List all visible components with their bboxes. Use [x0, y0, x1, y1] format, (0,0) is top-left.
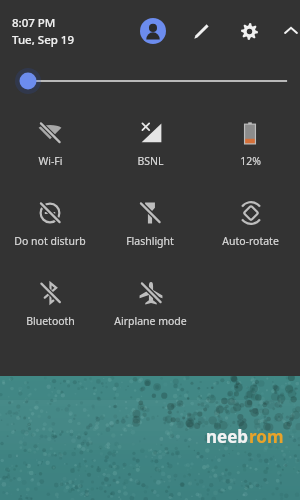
- staticText: Tue, Sep 19: [12, 32, 75, 48]
- staticText: 12%: [240, 154, 261, 168]
- button[interactable]: Auto-rotate: [218, 198, 283, 250]
- button[interactable]: Brightness: [0, 62, 300, 100]
- staticText: Wi-Fi: [38, 154, 63, 168]
- staticText: Flashlight: [126, 234, 174, 248]
- staticText: Auto-rotate: [222, 234, 279, 248]
- staticText: Bluetooth: [26, 314, 75, 328]
- button[interactable]: Do not disturb: [10, 198, 90, 250]
- button[interactable]: Settings: [234, 16, 264, 46]
- button[interactable]: Bluetooth: [22, 278, 79, 330]
- button[interactable]: Wi-Fi: [33, 118, 67, 170]
- button[interactable]: BSNL: [133, 118, 168, 170]
- staticText: neeb: [206, 425, 249, 448]
- button[interactable]: Flashlight: [122, 198, 178, 250]
- button[interactable]: Airplane mode: [110, 278, 191, 330]
- staticText: rom: [249, 425, 284, 448]
- staticText: BSNL: [137, 154, 164, 168]
- button[interactable]: 12%: [233, 118, 267, 170]
- button[interactable]: User account: [138, 16, 168, 46]
- staticText: 8:07 PM: [12, 15, 56, 31]
- button[interactable]: Edit tiles: [186, 16, 216, 46]
- staticText: Airplane mode: [114, 314, 187, 328]
- button[interactable]: Collapse: [282, 16, 300, 46]
- staticText: Do not disturb: [14, 234, 86, 248]
